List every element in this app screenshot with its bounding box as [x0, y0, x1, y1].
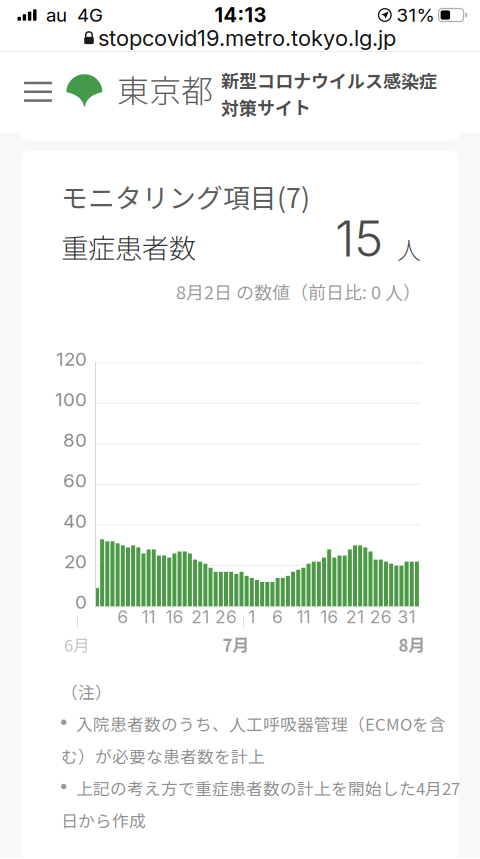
staticText: 対策サイト — [221, 94, 311, 120]
staticText: む）が必要な患者数を計上 — [61, 744, 265, 768]
staticText: 4G — [77, 4, 103, 26]
staticText: 26 — [215, 606, 237, 627]
staticText: 120 — [56, 348, 87, 370]
staticText: 31 — [398, 606, 416, 627]
staticText: 11 — [142, 606, 156, 627]
staticText: 重症患者数 — [61, 227, 196, 266]
staticText: 新型コロナウイルス感染症 — [221, 67, 437, 93]
staticText: 26 — [370, 606, 392, 627]
staticText: 11 — [296, 606, 310, 627]
button[interactable]: stopcovid19.metro.tokyo.lg.jp — [0, 25, 480, 51]
button[interactable]: メニュー — [0, 52, 66, 101]
staticText: 東京都 — [117, 66, 213, 112]
staticText: 1 — [248, 606, 255, 627]
staticText: 上記の考え方で重症患者数の計上を開始した4月27 — [76, 776, 460, 800]
staticText: 14:13 — [215, 3, 267, 27]
staticText: 16 — [320, 606, 338, 627]
staticText: 7月 — [222, 632, 249, 656]
staticText: 8月2日 の数値（前日比: 0 人） — [176, 278, 421, 304]
staticText: 21 — [346, 606, 364, 627]
staticText: 16 — [165, 606, 183, 627]
staticText: au — [46, 4, 67, 26]
staticText: 人 — [397, 232, 421, 266]
staticText: 6月 — [64, 632, 90, 656]
staticText: 日から作成 — [61, 808, 146, 832]
staticText: 20 — [64, 550, 87, 573]
staticText: 31% — [397, 4, 435, 26]
staticText: 100 — [55, 388, 87, 411]
staticText: 40 — [63, 510, 87, 532]
staticText: モニタリング項目(7) — [61, 177, 310, 216]
staticText: 21 — [191, 606, 209, 627]
button[interactable]: 東京都 — [66, 52, 213, 112]
staticText: 60 — [63, 469, 87, 492]
staticText: 8月 — [398, 632, 425, 656]
staticText: 6 — [117, 606, 128, 627]
staticText: 0 — [75, 591, 87, 613]
staticText: stopcovid19.metro.tokyo.lg.jp — [98, 25, 396, 51]
staticText: 6 — [272, 606, 283, 627]
staticText: 80 — [63, 429, 87, 451]
staticText: （注） — [61, 679, 112, 703]
staticText: 入院患者数のうち、人工呼吸器管理（ECMOを含 — [76, 711, 446, 736]
staticText: 15 — [335, 209, 383, 268]
